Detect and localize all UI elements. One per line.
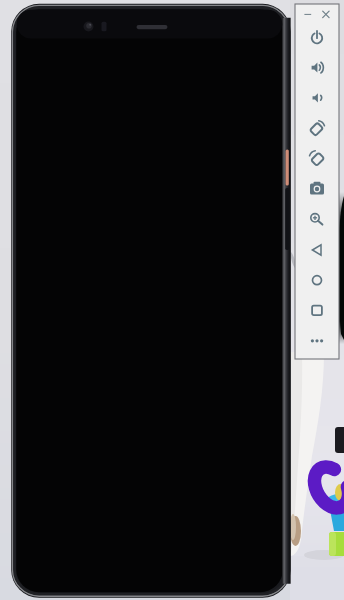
button[interactable]: Recent apps	[295, 297, 339, 323]
button[interactable]: Back	[295, 237, 339, 263]
button[interactable]: Home	[295, 267, 339, 293]
button[interactable]: Volume up	[295, 55, 339, 81]
button[interactable]: Take screenshot	[295, 176, 339, 202]
button[interactable]: Volume down	[295, 85, 339, 111]
button[interactable]: More options	[295, 328, 339, 354]
button[interactable]: Rotate right	[295, 145, 339, 171]
button[interactable]: Rotate left	[295, 115, 339, 141]
button[interactable]: Power	[295, 24, 339, 50]
button[interactable]: Close	[316, 4, 338, 25]
button[interactable]: Zoom	[295, 205, 339, 231]
button[interactable]: Minimize	[295, 4, 316, 25]
